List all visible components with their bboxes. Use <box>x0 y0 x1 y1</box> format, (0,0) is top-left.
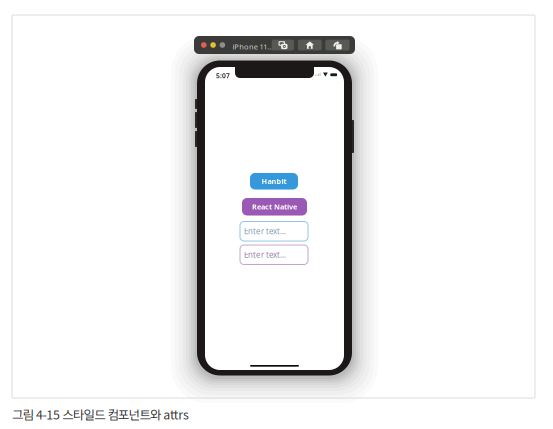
button[interactable]: Enter text... <box>240 245 308 264</box>
staticText: iPhone 11… <box>232 41 273 52</box>
staticText: Enter text... <box>244 249 286 260</box>
staticText: 5:07 <box>216 71 230 80</box>
button[interactable]: React Native <box>242 198 307 215</box>
staticText: React Native <box>252 202 297 212</box>
button[interactable]: Hanbit <box>250 173 298 189</box>
button[interactable]: Share <box>325 40 349 50</box>
staticText: Hanbit <box>261 176 286 186</box>
button[interactable]: Screenshot <box>272 40 294 50</box>
button[interactable]: Enter text... <box>240 221 308 241</box>
button[interactable]: Home <box>298 40 322 50</box>
staticText: 그림 4-15 스타일드 컴포넌트와 attrs <box>12 405 189 423</box>
staticText: Enter text... <box>244 226 286 237</box>
